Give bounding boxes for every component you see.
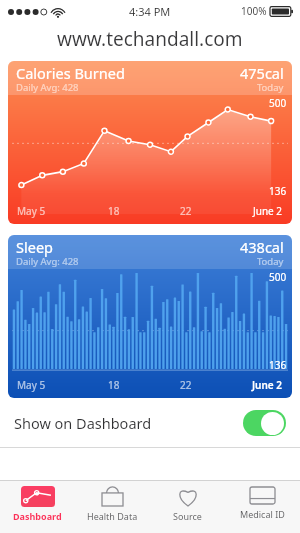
button[interactable]: Medical ID <box>225 481 300 533</box>
staticText: Today <box>257 81 284 93</box>
staticText: Source <box>173 510 202 522</box>
staticText: 136 <box>269 358 287 372</box>
staticText: June 2 <box>252 378 283 392</box>
staticText: Medical ID <box>240 508 285 520</box>
staticText: Calories Burned <box>16 63 125 83</box>
staticText: Daily Avg: 428 <box>16 81 79 93</box>
staticText: Health Data <box>87 510 138 522</box>
button[interactable]: Calories Burned <box>8 61 292 224</box>
button[interactable]: Source <box>150 481 225 533</box>
staticText: Sleep <box>16 237 53 257</box>
button[interactable]: Show on Dashboard toggle, on <box>243 410 286 436</box>
staticText: 22 <box>180 378 192 392</box>
staticText: May 5 <box>17 204 46 218</box>
staticText: May 5 <box>17 378 46 392</box>
staticText: Show on Dashboard <box>14 413 243 433</box>
other: Health Data <box>101 486 124 507</box>
staticText: 475cal <box>240 63 284 83</box>
staticText: 438cal <box>240 237 284 257</box>
staticText: 136 <box>269 184 287 198</box>
other: Dashboard <box>21 486 55 507</box>
staticText: 4:34 PM <box>129 4 171 19</box>
button[interactable]: Dashboard <box>0 481 75 533</box>
button[interactable]: Sleep <box>8 235 292 398</box>
other: Medical ID <box>249 486 276 505</box>
staticText: June 2 <box>253 204 283 218</box>
staticText: 18 <box>108 204 120 218</box>
button[interactable]: Health Data <box>75 481 150 533</box>
staticText: 18 <box>108 378 120 392</box>
staticText: Dashboard <box>13 510 62 522</box>
staticText: Daily Avg: 428 <box>16 255 79 267</box>
staticText: www.techandall.com <box>57 26 243 52</box>
staticText: 500 <box>269 96 287 110</box>
staticText: Today <box>257 255 284 267</box>
button[interactable]: Show on Dashboard <box>0 399 300 447</box>
other: Source <box>176 486 200 507</box>
staticText: 100% <box>241 4 267 18</box>
staticText: 500 <box>269 270 287 284</box>
staticText: 22 <box>180 204 192 218</box>
